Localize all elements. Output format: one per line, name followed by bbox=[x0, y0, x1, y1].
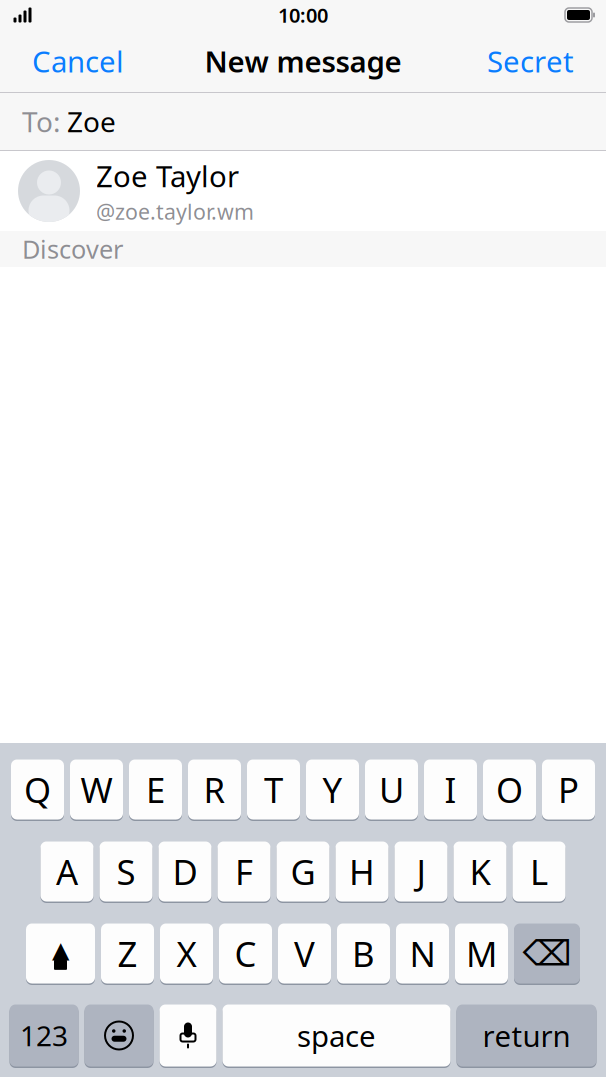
staticText: ⌫ bbox=[522, 934, 571, 973]
button[interactable]: To: bbox=[0, 93, 606, 150]
button[interactable]: Shift bbox=[26, 922, 95, 985]
staticText: X bbox=[176, 930, 196, 976]
button[interactable]: N bbox=[396, 922, 449, 985]
button[interactable]: X bbox=[160, 922, 213, 985]
button[interactable]: return bbox=[456, 1003, 596, 1068]
staticText: To: bbox=[22, 103, 61, 140]
button[interactable]: A bbox=[40, 840, 93, 903]
staticText: @zoe.taylor.wm bbox=[96, 197, 254, 226]
staticText: R bbox=[203, 766, 225, 812]
button[interactable]: S bbox=[99, 840, 152, 903]
button[interactable]: W bbox=[70, 758, 123, 821]
button[interactable]: Emoji bbox=[84, 1003, 153, 1068]
staticText: D bbox=[172, 848, 197, 894]
button[interactable]: G bbox=[276, 840, 329, 903]
button[interactable]: Dictate bbox=[159, 1003, 216, 1068]
staticText: ▲ bbox=[52, 937, 69, 963]
button[interactable]: J bbox=[394, 840, 447, 903]
staticText: New message bbox=[204, 41, 401, 80]
button[interactable]: I bbox=[424, 758, 477, 821]
button[interactable]: L bbox=[512, 840, 565, 903]
button[interactable]: R bbox=[188, 758, 241, 821]
button[interactable]: Secret bbox=[471, 31, 590, 90]
button[interactable]: U bbox=[365, 758, 418, 821]
staticText: G bbox=[290, 848, 315, 894]
staticText: L bbox=[530, 848, 548, 894]
button[interactable]: E bbox=[129, 758, 182, 821]
staticText: K bbox=[469, 848, 490, 894]
staticText: F bbox=[235, 848, 253, 894]
button[interactable]: B bbox=[337, 922, 390, 985]
staticText: return bbox=[482, 1016, 570, 1055]
staticText: 10:00 bbox=[278, 2, 328, 28]
button[interactable]: Z bbox=[101, 922, 154, 985]
staticText: O bbox=[496, 766, 523, 812]
staticText: M bbox=[466, 930, 497, 976]
staticText: Zoe bbox=[67, 103, 116, 140]
button[interactable]: K bbox=[453, 840, 506, 903]
button[interactable]: space bbox=[222, 1003, 450, 1068]
button[interactable]: Q bbox=[11, 758, 64, 821]
staticText: J bbox=[416, 848, 425, 894]
button[interactable]: 123 bbox=[9, 1003, 78, 1068]
button[interactable]: O bbox=[483, 758, 536, 821]
button[interactable]: Zoe Taylor bbox=[0, 151, 606, 231]
staticText: H bbox=[349, 848, 375, 894]
staticText: E bbox=[146, 766, 165, 812]
button[interactable]: Y bbox=[306, 758, 359, 821]
staticText: Y bbox=[322, 766, 342, 812]
staticText: C bbox=[234, 930, 256, 976]
button[interactable]: V bbox=[278, 922, 331, 985]
staticText: P bbox=[558, 766, 579, 812]
button[interactable]: H bbox=[335, 840, 388, 903]
staticText: B bbox=[352, 930, 375, 976]
staticText: 123 bbox=[20, 1017, 68, 1054]
button[interactable]: T bbox=[247, 758, 300, 821]
staticText: S bbox=[116, 848, 135, 894]
staticText: T bbox=[264, 766, 283, 812]
button[interactable]: Cancel bbox=[16, 31, 140, 90]
staticText: U bbox=[379, 766, 404, 812]
staticText: V bbox=[294, 930, 315, 976]
button[interactable]: Delete bbox=[514, 922, 580, 985]
staticText: Secret bbox=[487, 41, 574, 80]
button[interactable]: D bbox=[158, 840, 211, 903]
staticText: W bbox=[80, 766, 112, 812]
staticText: Zoe Taylor bbox=[96, 156, 239, 195]
staticText: N bbox=[409, 930, 435, 976]
staticText: A bbox=[56, 848, 78, 894]
staticText: Discover bbox=[22, 232, 123, 266]
button[interactable]: M bbox=[455, 922, 508, 985]
button[interactable]: P bbox=[542, 758, 595, 821]
staticText: space bbox=[297, 1016, 376, 1055]
button[interactable]: C bbox=[219, 922, 272, 985]
staticText: Z bbox=[117, 930, 137, 976]
staticText: Q bbox=[24, 766, 51, 812]
staticText: Cancel bbox=[32, 41, 124, 80]
button[interactable]: F bbox=[217, 840, 270, 903]
staticText: I bbox=[444, 766, 456, 812]
